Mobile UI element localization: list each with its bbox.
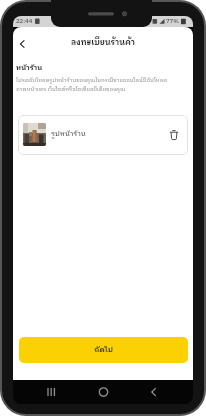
staticText: รูปหน้าร้าน	[51, 128, 86, 140]
button[interactable]	[145, 384, 162, 400]
staticText: 22:44	[16, 16, 33, 26]
staticText: 77%	[166, 16, 179, 26]
button[interactable]	[15, 37, 29, 51]
button[interactable]	[168, 129, 180, 142]
button[interactable]	[95, 384, 112, 400]
staticText: หน้าร้าน	[16, 62, 43, 74]
button[interactable]: ถัดไป	[19, 337, 188, 363]
staticText: ถัดไป	[94, 344, 114, 356]
staticText: ภาพหน้าเพจ เว็บไซต์หรือโซเชียลมีเดียของค…	[16, 85, 126, 94]
button[interactable]: รูปหน้าร้าน	[18, 115, 188, 155]
staticText: ลงทะเบียนร้านค้า	[13, 36, 193, 380]
button[interactable]	[43, 384, 60, 400]
staticText: โปรดอัปโหลดรูปหน้าร้านของคุณในกรณีขายออน…	[16, 76, 167, 85]
